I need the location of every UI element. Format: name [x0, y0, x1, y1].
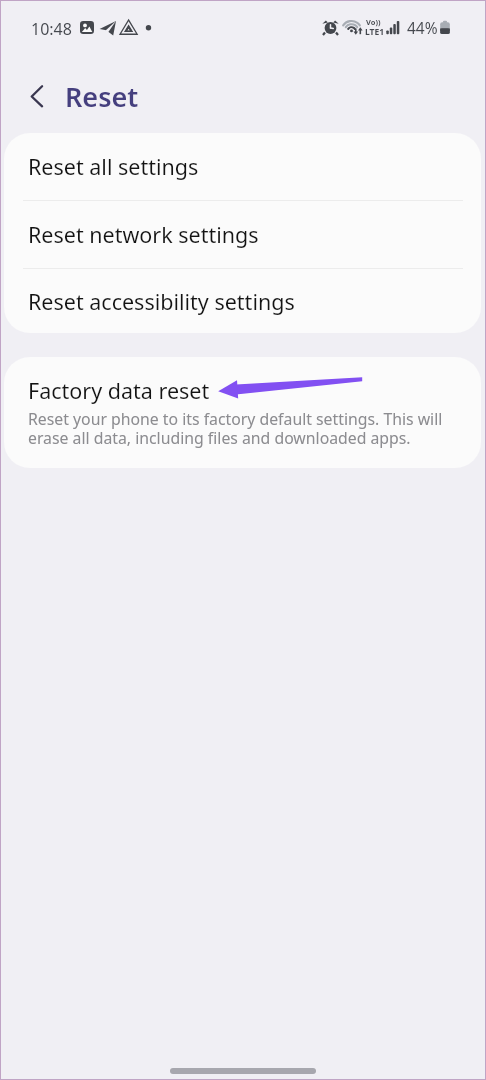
- staticText: Reset all settings: [28, 152, 199, 181]
- button[interactable]: Reset network settings: [4, 201, 481, 268]
- staticText: LTE1: [365, 26, 385, 38]
- staticText: Reset network settings: [28, 220, 259, 249]
- staticText: 44%: [407, 17, 438, 38]
- button[interactable]: Reset all settings: [4, 133, 481, 200]
- button[interactable]: Factory data reset: [4, 357, 481, 468]
- staticText: Vo)): [366, 17, 381, 27]
- staticText: Reset your phone to its factory default …: [28, 408, 443, 449]
- staticText: Reset accessibility settings: [28, 287, 295, 316]
- button[interactable]: Navigate up: [14, 75, 58, 119]
- staticText: 10:48: [31, 18, 72, 40]
- staticText: Factory data reset: [28, 376, 210, 405]
- staticText: Reset: [65, 78, 139, 115]
- button[interactable]: Reset accessibility settings: [4, 269, 481, 333]
